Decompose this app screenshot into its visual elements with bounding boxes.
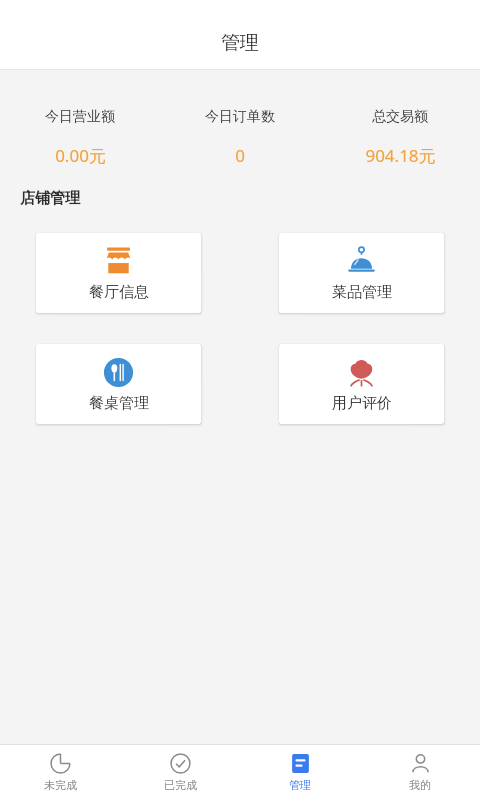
staticText: 菜品管理	[332, 283, 392, 302]
staticText: 0	[235, 144, 245, 167]
button[interactable]: 我的	[360, 745, 480, 800]
button[interactable]: 餐桌管理	[36, 344, 201, 424]
staticText: 用户评价	[332, 394, 392, 413]
staticText: 未完成	[44, 778, 77, 792]
button[interactable]: 总交易额	[320, 108, 480, 167]
staticText: 已完成	[164, 778, 197, 792]
staticText: 管理	[221, 31, 259, 55]
staticText: 0.00元	[55, 144, 106, 167]
button[interactable]: 已完成	[120, 745, 240, 800]
button[interactable]: 餐厅信息	[36, 233, 201, 313]
staticText: 店铺管理	[20, 189, 80, 208]
staticText: 今日营业额	[45, 108, 115, 126]
staticText: 餐厅信息	[89, 283, 149, 302]
staticText: 904.18元	[365, 144, 436, 167]
button[interactable]: 管理	[240, 745, 360, 800]
button[interactable]: 菜品管理	[279, 233, 444, 313]
button[interactable]: 今日订单数	[160, 108, 320, 167]
staticText: 管理	[289, 778, 311, 792]
staticText: 我的	[409, 778, 431, 792]
button[interactable]: 未完成	[0, 745, 120, 800]
button[interactable]: 用户评价	[279, 344, 444, 424]
staticText: 总交易额	[372, 108, 428, 126]
staticText: 今日订单数	[205, 108, 275, 126]
staticText: 餐桌管理	[89, 394, 149, 413]
button[interactable]: 今日营业额	[0, 108, 160, 167]
